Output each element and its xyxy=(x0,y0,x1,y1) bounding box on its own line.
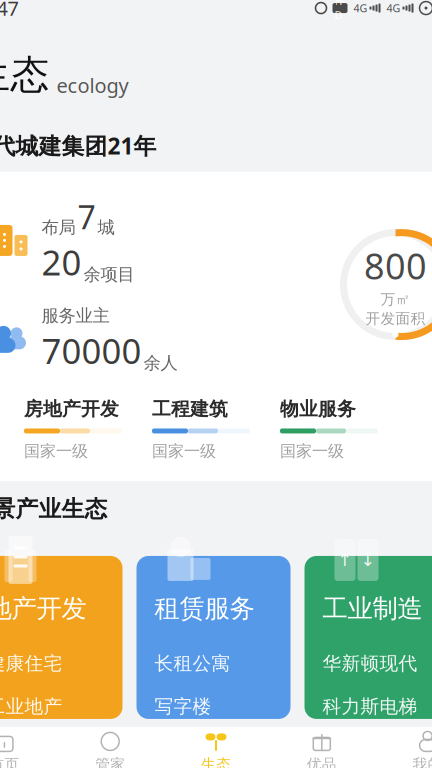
button[interactable]: 生态 xyxy=(163,727,269,768)
staticText: 20 xyxy=(41,239,81,285)
staticText: 长租公寓 xyxy=(154,652,230,675)
staticText: 写字楼 xyxy=(154,695,211,718)
staticText: 工业地产 xyxy=(0,695,62,718)
staticText: 生态 xyxy=(0,51,49,99)
staticText: 服务业主 xyxy=(41,305,109,326)
staticText: 优品 xyxy=(307,755,337,768)
staticText: 华新顿现代 xyxy=(322,652,417,675)
staticText: 城 xyxy=(97,217,114,238)
staticText: 7 xyxy=(77,196,95,238)
staticText: 09:47 xyxy=(0,0,18,21)
staticText: 国家一级 xyxy=(24,441,88,461)
staticText: 布局 xyxy=(41,217,75,238)
staticText: 生态 xyxy=(201,755,231,768)
button[interactable]: 工业制造 xyxy=(304,534,432,719)
staticText: 4G xyxy=(386,1,400,15)
staticText: 工程建筑 xyxy=(152,397,228,420)
staticText: ↑ xyxy=(337,550,352,570)
staticText: 物业服务 xyxy=(280,397,356,420)
staticText: 工业制造 xyxy=(322,593,422,624)
staticText: ecology xyxy=(56,72,128,99)
staticText: 国家一级 xyxy=(280,441,344,461)
button[interactable]: 首页 xyxy=(0,727,57,768)
staticText: 健康住宅 xyxy=(0,652,62,675)
button[interactable]: 租赁服务 xyxy=(136,534,290,719)
staticText: ↓ xyxy=(360,550,375,570)
button[interactable]: 优品 xyxy=(269,727,375,768)
button[interactable]: 管家 xyxy=(57,727,163,768)
button[interactable]: 我的 xyxy=(375,727,432,768)
staticText: HD xyxy=(334,0,345,22)
staticText: 地产开发 xyxy=(0,593,86,624)
staticText: 国家一级 xyxy=(152,441,216,461)
staticText: 现代城建集团21年 xyxy=(0,131,156,161)
staticText: 房地产开发 xyxy=(24,397,119,420)
staticText: 余项目 xyxy=(83,264,134,285)
staticText: 管家 xyxy=(95,755,125,768)
staticText: 开发面积 xyxy=(365,309,425,327)
staticText: 800 xyxy=(364,242,427,289)
staticText: 4G xyxy=(353,1,367,15)
staticText: 全景产业生态 xyxy=(0,495,107,523)
staticText: 余人 xyxy=(143,352,177,373)
button[interactable]: 地产开发 xyxy=(0,534,122,719)
staticText: 科力斯电梯 xyxy=(322,695,417,718)
staticText: 70000 xyxy=(41,327,141,373)
staticText: 租赁服务 xyxy=(154,593,254,624)
staticText: 我的 xyxy=(413,755,432,768)
staticText: 首页 xyxy=(0,755,19,768)
staticText: 万㎡ xyxy=(380,290,410,308)
